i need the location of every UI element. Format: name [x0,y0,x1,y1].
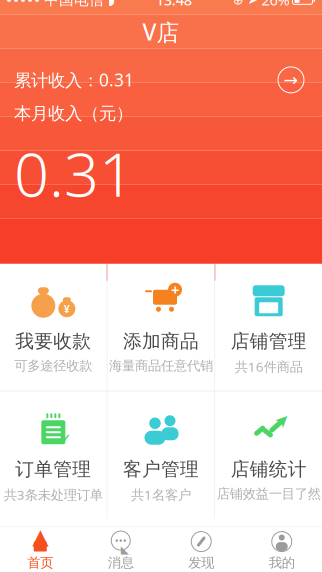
staticText: 店铺统计 [231,458,307,481]
button[interactable]: ▲ [0,527,80,572]
staticText: 本月收入（元） [14,103,133,124]
button[interactable]: 查看收入详情 [274,63,308,97]
staticText: ▲ [32,524,48,549]
staticText: ◣ [121,543,129,556]
staticText: 海量商品任意代销 [109,358,213,374]
button[interactable]: ◣ [80,527,161,572]
staticText: 我的 [269,555,295,571]
button[interactable]: ✓ [0,392,107,519]
staticText: 13:48 [156,0,192,10]
staticText: 订单管理 [15,458,91,481]
staticText: 发现 [188,555,214,571]
button[interactable]: 客户管理 [108,392,214,519]
staticText: ¥ [64,302,70,316]
staticText: 店铺效益一目了然 [217,486,321,502]
staticText: 0.31 [14,132,134,214]
staticText: + [171,280,179,299]
staticText: 客户管理 [123,458,199,481]
staticText: 消息 [108,555,134,571]
button[interactable]: + [108,264,214,391]
staticText: ⊕ [232,0,243,7]
button[interactable]: ➤ [215,392,322,519]
staticText: 中国电信 [44,0,104,9]
staticText: 26% [261,0,289,10]
staticText: → [283,70,298,90]
staticText: ◗ [108,0,115,7]
staticText: 添加商品 [123,330,199,353]
button[interactable]: 店铺管理 [215,264,322,391]
staticText: 首页 [27,555,53,571]
staticText: 可多途径收款 [14,358,92,374]
button[interactable]: 我的 [241,527,322,572]
staticText: 店铺管理 [231,330,307,353]
staticText: ➤ [275,410,290,430]
staticText: ✓ [58,430,73,450]
staticText: 我要收款 [15,330,91,353]
staticText: 共16件商品 [235,358,303,375]
staticText: ➤ [247,0,257,7]
staticText: V店 [142,17,179,47]
staticText: 累计收入：0.31 [14,68,134,91]
staticText: 共1名客户 [131,486,191,503]
staticText: 共3条未处理订单 [4,486,103,503]
button[interactable]: ¥ [0,264,107,391]
button[interactable]: 发现 [161,527,241,572]
